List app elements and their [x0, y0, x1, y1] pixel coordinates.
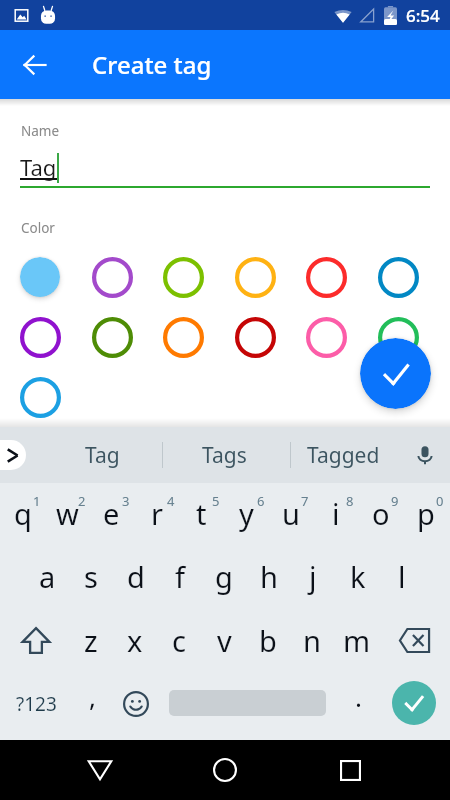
button[interactable]: t [179, 482, 224, 545]
staticText: x [127, 621, 143, 660]
button[interactable]: s [69, 545, 113, 608]
button[interactable]: l [380, 545, 424, 608]
button[interactable]: Expand suggestions [0, 440, 26, 470]
staticText: g [215, 557, 233, 596]
button[interactable]: Color swatch [157, 251, 209, 303]
staticText: t [196, 494, 207, 533]
button[interactable]: Backspace [385, 609, 443, 672]
button[interactable]: e [89, 482, 134, 545]
staticText: Name [21, 122, 60, 140]
staticText: Tagged [307, 441, 380, 470]
staticText: 9 [391, 492, 399, 510]
button[interactable]: Color swatch [372, 311, 424, 363]
staticText: a [39, 557, 56, 596]
button[interactable]: Enter [392, 681, 436, 725]
button[interactable]: Color swatch [14, 371, 66, 423]
button[interactable]: Tag [37, 427, 167, 483]
button[interactable]: Home [201, 746, 249, 794]
button[interactable]: k [336, 545, 380, 608]
button[interactable]: i [313, 482, 358, 545]
button[interactable]: w [45, 482, 90, 545]
button[interactable]: Tagged [291, 427, 396, 483]
button[interactable]: Tags [164, 427, 284, 483]
button[interactable]: Voice input [400, 427, 450, 483]
button[interactable]: Color swatch [157, 311, 209, 363]
button[interactable]: Emoji [114, 674, 158, 734]
button[interactable]: Color swatch [372, 251, 424, 303]
staticText: i [332, 494, 340, 533]
button[interactable]: b [246, 609, 290, 672]
button[interactable]: x [113, 609, 157, 672]
staticText: l [398, 557, 406, 596]
button[interactable]: z [69, 609, 113, 672]
button[interactable]: . [336, 666, 380, 726]
button[interactable]: Color swatch [229, 311, 281, 363]
staticText: 2 [78, 492, 86, 510]
button[interactable]: Shift [7, 609, 65, 672]
button[interactable]: q [0, 482, 45, 545]
staticText: 4 [167, 492, 175, 510]
staticText: e [103, 494, 120, 533]
staticText: c [172, 621, 186, 660]
button[interactable]: Color swatch [14, 251, 66, 303]
button[interactable]: Save tag [360, 338, 431, 409]
button[interactable]: , [70, 666, 114, 726]
button[interactable]: r [134, 482, 179, 545]
button[interactable]: Back [76, 746, 124, 794]
button[interactable]: Color swatch [86, 311, 138, 363]
staticText: 6 [257, 492, 265, 510]
staticText: 1 [33, 492, 41, 510]
button[interactable]: g [202, 545, 246, 608]
staticText: u [282, 494, 300, 533]
staticText: f [175, 557, 185, 596]
staticText: Create tag [92, 48, 212, 81]
staticText: 3 [122, 492, 130, 510]
staticText: ?123 [16, 691, 57, 717]
staticText: d [127, 557, 145, 596]
staticText: Tags [202, 441, 247, 470]
staticText: , [89, 679, 96, 714]
button[interactable]: n [290, 609, 334, 672]
button[interactable]: Color swatch [14, 311, 66, 363]
staticText: b [259, 621, 277, 660]
button[interactable]: Color swatch [86, 251, 138, 303]
staticText: 0 [436, 492, 444, 510]
button[interactable]: m [335, 609, 379, 672]
staticText: r [151, 494, 163, 533]
button[interactable]: f [158, 545, 202, 608]
staticText: 5 [212, 492, 220, 510]
staticText: 8 [346, 492, 354, 510]
staticText: y [239, 494, 254, 533]
button[interactable]: ?123 [7, 674, 65, 734]
staticText: q [14, 494, 32, 533]
staticText: m [343, 621, 371, 660]
button[interactable]: c [157, 609, 201, 672]
staticText: p [417, 494, 435, 533]
button[interactable]: a [25, 545, 69, 608]
staticText: s [84, 557, 98, 596]
staticText: z [84, 621, 98, 660]
button[interactable]: Color swatch [300, 251, 352, 303]
staticText: v [217, 621, 232, 660]
staticText: h [260, 557, 278, 596]
button[interactable]: p [403, 482, 448, 545]
button[interactable]: Color swatch [229, 251, 281, 303]
staticText: 6:54 [406, 4, 440, 27]
button[interactable]: j [291, 545, 335, 608]
button[interactable]: Recent apps [326, 746, 374, 794]
button[interactable]: u [268, 482, 313, 545]
button[interactable]: o [358, 482, 403, 545]
staticText: j [309, 557, 317, 596]
staticText: Tag [85, 441, 120, 470]
staticText: . [355, 679, 362, 714]
button[interactable]: Back [0, 30, 70, 99]
staticText: o [372, 494, 390, 533]
button[interactable]: d [114, 545, 158, 608]
button[interactable]: y [224, 482, 269, 545]
button[interactable]: v [202, 609, 246, 672]
button[interactable]: Color swatch [300, 311, 352, 363]
button[interactable]: h [247, 545, 291, 608]
staticText: Tag [20, 152, 57, 182]
staticText: Color [21, 219, 55, 237]
